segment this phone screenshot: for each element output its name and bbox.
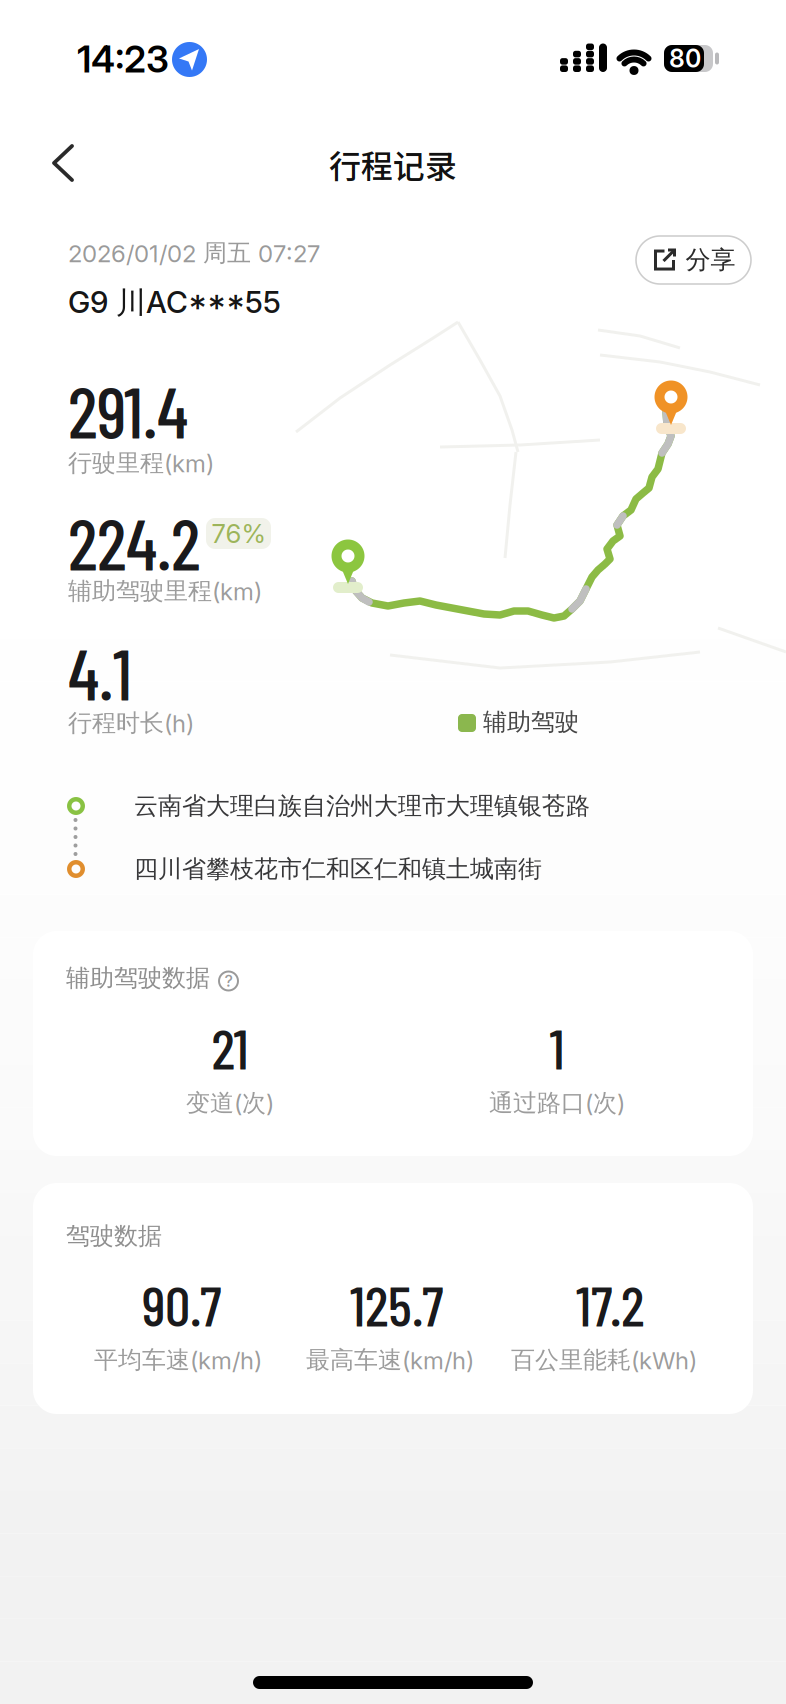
staticText: 驾驶数据: [66, 1221, 162, 1251]
staticText: 行程记录: [329, 141, 457, 187]
staticText: 125.7: [350, 1270, 444, 1338]
staticText: 四川省攀枝花市仁和区仁和镇土城南街: [134, 854, 542, 884]
staticText: G9 川AC***55: [68, 284, 281, 322]
staticText: 行驶里程(km): [68, 448, 214, 478]
staticText: 2026/01/02 周五 07:27: [68, 238, 320, 268]
staticText: 行程时长(h): [68, 708, 194, 738]
staticText: 21: [211, 1013, 248, 1081]
staticText: 76%: [211, 518, 265, 549]
staticText: 1: [549, 1013, 564, 1081]
staticText: 80: [669, 43, 701, 74]
button[interactable]: Back: [42, 137, 90, 189]
staticText: 291.4: [68, 367, 188, 453]
staticText: 辅助驾驶里程(km): [68, 576, 262, 606]
staticText: 224.2: [68, 499, 200, 585]
staticText: 90.7: [142, 1270, 222, 1338]
staticText: ?: [224, 971, 232, 991]
staticText: 辅助驾驶: [483, 707, 579, 737]
staticText: 云南省大理白族自治州大理市大理镇银苍路: [134, 791, 590, 821]
staticText: 百公里能耗(kWh): [511, 1345, 697, 1375]
staticText: 通过路口(次): [489, 1088, 625, 1118]
staticText: 变道(次): [186, 1088, 274, 1118]
staticText: 最高车速(km/h): [306, 1345, 474, 1375]
button[interactable]: 辅助驾驶数据说明: [218, 970, 239, 991]
staticText: 14:23: [77, 37, 169, 81]
staticText: 平均车速(km/h): [94, 1345, 262, 1375]
staticText: 4.1: [68, 629, 132, 715]
staticText: 辅助驾驶数据: [66, 963, 210, 993]
staticText: 分享: [685, 244, 735, 276]
button[interactable]: 分享: [636, 236, 751, 284]
staticText: 17.2: [576, 1270, 644, 1338]
